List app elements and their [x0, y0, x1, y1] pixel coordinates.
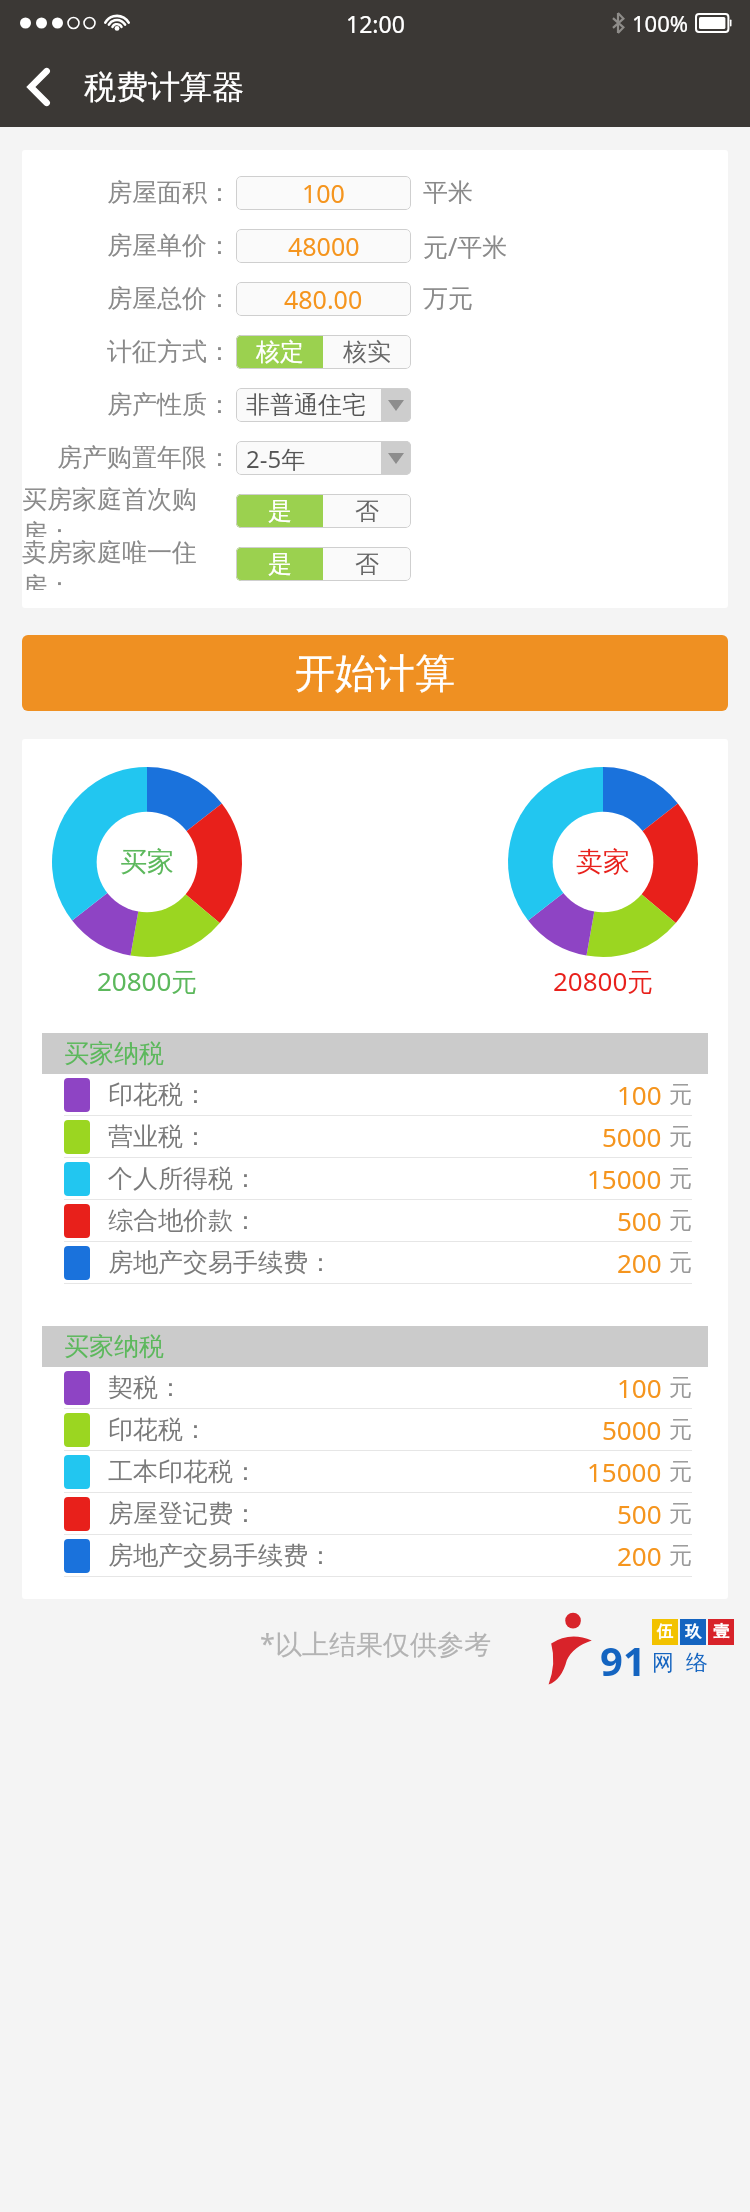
- staticText: 网: [652, 1649, 674, 1677]
- staticText: 500: [617, 1496, 662, 1531]
- staticText: 卖家: [576, 845, 630, 879]
- button[interactable]: 2-5年: [236, 441, 411, 475]
- staticText: 500: [617, 1203, 662, 1238]
- staticText: 15000: [587, 1161, 662, 1196]
- staticText: 税费计算器: [84, 67, 244, 107]
- staticText: 元: [669, 1080, 692, 1109]
- staticText: 买家纳税: [64, 1331, 164, 1362]
- staticText: 2-5年: [246, 442, 306, 475]
- staticText: 万元: [423, 283, 473, 314]
- staticText: 非普通住宅: [246, 390, 366, 420]
- staticText: 是: [268, 496, 292, 526]
- staticText: 否: [355, 549, 379, 579]
- staticText: 房屋登记费：: [108, 1498, 617, 1529]
- button[interactable]: 工本印花税：: [42, 1451, 708, 1492]
- staticText: 48000: [288, 229, 360, 263]
- staticText: 印花税：: [108, 1414, 602, 1445]
- button[interactable]: 是: [236, 547, 323, 581]
- button[interactable]: 是: [236, 494, 323, 528]
- staticText: 元: [669, 1248, 692, 1277]
- staticText: 伍: [657, 1622, 673, 1642]
- button[interactable]: 核定: [236, 335, 323, 369]
- button[interactable]: 否: [323, 547, 411, 581]
- staticText: 12:00: [346, 8, 405, 39]
- staticText: 元: [669, 1457, 692, 1486]
- button[interactable]: 非普通住宅: [236, 388, 411, 422]
- button[interactable]: 印花税：: [42, 1409, 708, 1450]
- button[interactable]: 开始计算: [22, 635, 728, 711]
- button[interactable]: 印花税：: [42, 1074, 708, 1115]
- staticText: 卖房家庭唯一住房：: [22, 537, 232, 590]
- button[interactable]: 48000: [236, 229, 411, 263]
- button[interactable]: 100: [236, 176, 411, 210]
- staticText: 200: [617, 1538, 662, 1573]
- staticText: 100%: [632, 8, 689, 38]
- staticText: 元: [669, 1499, 692, 1528]
- button[interactable]: 房地产交易手续费：: [42, 1535, 708, 1576]
- staticText: 买房家庭首次购房：: [22, 484, 232, 537]
- staticText: 房屋面积：: [107, 177, 232, 208]
- staticText: 络: [686, 1649, 708, 1677]
- staticText: 元: [669, 1122, 692, 1151]
- staticText: 元: [669, 1206, 692, 1235]
- button[interactable]: 核实: [323, 335, 411, 369]
- staticText: 20800元: [97, 963, 198, 999]
- staticText: 营业税：: [108, 1121, 602, 1152]
- staticText: 否: [355, 496, 379, 526]
- staticText: 100: [302, 176, 345, 210]
- staticText: 契税：: [108, 1372, 617, 1403]
- staticText: 房屋总价：: [107, 283, 232, 314]
- staticText: 5000: [602, 1119, 662, 1154]
- staticText: 工本印花税：: [108, 1456, 587, 1487]
- button[interactable]: 综合地价款：: [42, 1200, 708, 1241]
- staticText: 房产购置年限：: [57, 442, 232, 473]
- staticText: 元: [669, 1541, 692, 1570]
- staticText: 元: [669, 1415, 692, 1444]
- button[interactable]: Back: [8, 56, 70, 118]
- staticText: *以上结果仅供参考: [260, 1625, 491, 1662]
- staticText: 元: [669, 1373, 692, 1402]
- staticText: 是: [268, 549, 292, 579]
- staticText: 壹: [713, 1622, 729, 1642]
- staticText: 平米: [423, 177, 473, 208]
- button[interactable]: 房屋登记费：: [42, 1493, 708, 1534]
- staticText: 元: [669, 1164, 692, 1193]
- staticText: 房地产交易手续费：: [108, 1540, 617, 1571]
- button[interactable]: 房地产交易手续费：: [42, 1242, 708, 1283]
- button[interactable]: 营业税：: [42, 1116, 708, 1157]
- button[interactable]: 480.00: [236, 282, 411, 316]
- staticText: 房地产交易手续费：: [108, 1247, 617, 1278]
- staticText: 元/平米: [423, 229, 508, 263]
- button[interactable]: 个人所得税：: [42, 1158, 708, 1199]
- staticText: 100: [617, 1077, 662, 1112]
- staticText: 15000: [587, 1454, 662, 1489]
- staticText: 91: [600, 1633, 646, 1687]
- staticText: 计征方式：: [107, 336, 232, 367]
- staticText: 核实: [343, 337, 391, 367]
- staticText: 房产性质：: [107, 389, 232, 420]
- staticText: 印花税：: [108, 1079, 617, 1110]
- staticText: 买家纳税: [64, 1038, 164, 1069]
- staticText: 100: [617, 1370, 662, 1405]
- button[interactable]: 契税：: [42, 1367, 708, 1408]
- staticText: 个人所得税：: [108, 1163, 587, 1194]
- staticText: 20800元: [553, 963, 654, 999]
- staticText: 综合地价款：: [108, 1205, 617, 1236]
- staticText: 房屋单价：: [107, 230, 232, 261]
- staticText: 买家: [120, 845, 174, 879]
- staticText: 核定: [256, 337, 304, 367]
- button[interactable]: 否: [323, 494, 411, 528]
- staticText: 开始计算: [295, 648, 455, 698]
- staticText: 480.00: [284, 282, 363, 316]
- staticText: 5000: [602, 1412, 662, 1447]
- staticText: 200: [617, 1245, 662, 1280]
- staticText: 玖: [685, 1622, 701, 1642]
